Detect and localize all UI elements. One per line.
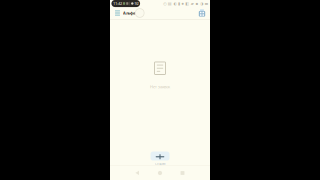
- staticText: 92: [134, 1, 138, 6]
- button[interactable]: Back: [133, 166, 142, 179]
- staticText: ▮: [178, 1, 180, 6]
- staticText: ◑: [200, 1, 203, 6]
- button[interactable]: Menu: [112, 7, 123, 19]
- staticText: Нет заявок: [150, 84, 170, 89]
- staticText: ◧: [185, 1, 189, 6]
- staticText: Создать: [155, 162, 165, 165]
- staticText: ▤: [168, 1, 172, 6]
- staticText: ●: [182, 2, 184, 5]
- button[interactable]: Recent apps: [178, 166, 187, 179]
- staticText: ▬: [205, 1, 209, 6]
- staticText: ◴: [163, 1, 166, 6]
- button[interactable]: Scan QR code: [197, 7, 207, 19]
- button[interactable]: Home: [155, 166, 164, 179]
- staticText: ◐: [173, 1, 176, 6]
- staticText: ▪: [195, 1, 198, 6]
- button[interactable]: Создать: [150, 152, 169, 165]
- staticText: ▰: [191, 1, 194, 6]
- staticText: 11:42: [113, 1, 122, 6]
- staticText: Альфа: [123, 10, 135, 16]
